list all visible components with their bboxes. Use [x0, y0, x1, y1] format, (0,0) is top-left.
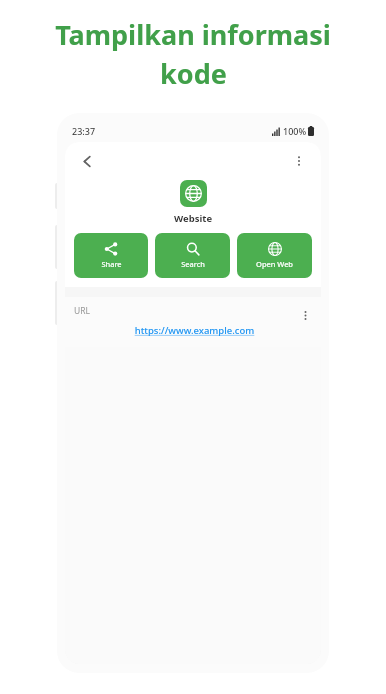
button[interactable]: Open Web: [237, 233, 312, 278]
button[interactable]: More options: [286, 148, 312, 174]
button[interactable]: Back: [74, 148, 100, 174]
button[interactable]: URL: [65, 297, 321, 347]
staticText: 100%: [283, 125, 307, 137]
staticText: 23:37: [72, 125, 96, 137]
staticText: https://www.example.com: [74, 324, 315, 337]
staticText: kode: [160, 55, 227, 92]
button[interactable]: URL options: [295, 305, 315, 325]
staticText: Website: [174, 212, 213, 225]
button[interactable]: Search: [155, 233, 230, 278]
staticText: Share: [101, 259, 122, 269]
staticText: Search: [181, 259, 205, 269]
staticText: Tampilkan informasi: [55, 16, 331, 53]
staticText: Open Web: [256, 259, 293, 269]
button[interactable]: Share: [74, 233, 148, 278]
staticText: URL: [74, 305, 90, 317]
